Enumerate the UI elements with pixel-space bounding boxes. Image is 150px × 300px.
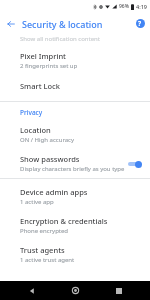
staticText: Phone encrypted (20, 227, 69, 235)
staticText: 2 fingerprints set up (20, 62, 78, 70)
button[interactable]: Help (130, 13, 150, 34)
button[interactable]: Device admin apps (0, 182, 150, 211)
staticText: Security & location (22, 18, 103, 30)
staticText: Encryption & credentials (20, 216, 108, 226)
button[interactable]: Back (20, 281, 44, 300)
button[interactable]: Trust agents (0, 240, 150, 269)
button[interactable]: Location (0, 120, 150, 149)
staticText: Show all notification content (20, 35, 100, 43)
button[interactable]: Show all notification content (0, 34, 150, 46)
staticText: 1 active app (20, 198, 54, 206)
staticText: Device admin apps (20, 187, 88, 197)
staticText: Pixel Imprint (20, 51, 66, 61)
staticText: ON / High accuracy (20, 136, 75, 144)
button[interactable]: Encryption & credentials (0, 211, 150, 240)
staticText: ? (138, 19, 142, 28)
button[interactable]: Back (0, 13, 22, 34)
staticText: Display characters briefly as you type (20, 165, 125, 173)
staticText: Privacy (20, 108, 43, 117)
staticText: 96% (119, 3, 129, 10)
staticText: Show passwords (20, 154, 80, 164)
staticText: Trust agents (20, 245, 65, 255)
staticText: 4:19 (136, 3, 147, 10)
staticText: Location (20, 125, 51, 135)
other: Show passwords toggle, on (126, 158, 142, 170)
button[interactable]: Home (63, 281, 87, 300)
staticText: 1 active trust agent (20, 256, 75, 264)
button[interactable]: Recent apps (107, 281, 131, 300)
staticText: Smart Lock (20, 81, 60, 91)
button[interactable]: Pixel Imprint (0, 46, 150, 75)
button[interactable]: Smart Lock (0, 75, 150, 97)
button[interactable]: Show passwords (0, 149, 150, 178)
